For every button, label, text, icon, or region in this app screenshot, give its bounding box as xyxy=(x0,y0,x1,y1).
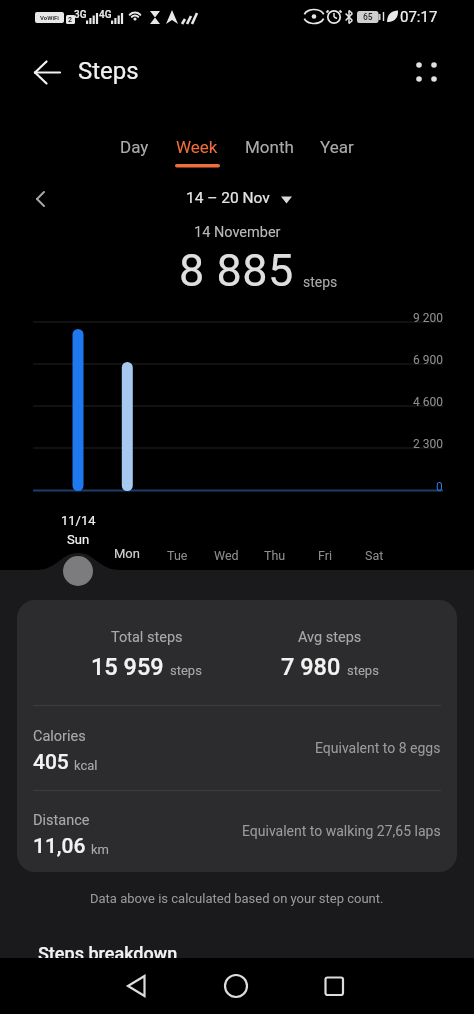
staticText: km xyxy=(91,842,109,857)
staticText: Data above is calculated based on your s… xyxy=(90,891,384,906)
button[interactable] xyxy=(405,50,449,94)
button[interactable] xyxy=(26,184,54,214)
staticText: Sun xyxy=(67,532,90,547)
staticText: Avg steps xyxy=(298,629,362,646)
staticText: VoWiFi xyxy=(40,14,59,21)
staticText: Steps xyxy=(78,57,139,85)
staticText: 7 980 xyxy=(281,653,341,681)
button[interactable]: Week xyxy=(0,0,66,20)
button[interactable] xyxy=(316,958,474,1014)
staticText: 6 900 xyxy=(413,353,443,367)
staticText: kcal xyxy=(74,758,98,773)
staticText: Year xyxy=(320,137,354,157)
button[interactable]: Year xyxy=(0,0,60,20)
button[interactable]: Day xyxy=(0,0,60,20)
button[interactable]: 14 – 20 Nov xyxy=(0,0,140,18)
staticText: Wed xyxy=(214,548,239,563)
button[interactable] xyxy=(158,958,316,1014)
staticText: Mon xyxy=(114,546,140,561)
staticText: 15 959 xyxy=(91,653,164,681)
staticText: Calories xyxy=(33,728,86,745)
staticText: 405 xyxy=(33,750,69,775)
staticText: Distance xyxy=(33,812,90,829)
button[interactable] xyxy=(0,958,158,1014)
button[interactable]: Distance xyxy=(33,790,441,872)
button[interactable] xyxy=(24,56,72,90)
staticText: Equivalent to walking 27,65 laps xyxy=(242,823,441,839)
button[interactable]: Avg steps xyxy=(220,600,440,705)
staticText: 11,06 xyxy=(33,834,86,859)
staticText: 4 600 xyxy=(413,395,443,409)
staticText: steps xyxy=(347,663,379,678)
staticText: 07:17 xyxy=(400,8,438,26)
button[interactable]: Total steps xyxy=(36,600,256,705)
staticText: 9 200 xyxy=(413,311,443,325)
staticText: Equivalent to 8 eggs xyxy=(315,740,441,756)
staticText: 2 300 xyxy=(413,437,443,451)
staticText: Sat xyxy=(365,548,384,563)
staticText: 0 xyxy=(436,480,443,494)
staticText: 3G xyxy=(74,9,87,21)
staticText: steps xyxy=(170,663,202,678)
staticText: Fri xyxy=(318,548,333,563)
staticText: 8 885 xyxy=(179,244,294,297)
staticText: 11/14 xyxy=(61,513,96,528)
staticText: Total steps xyxy=(111,629,183,646)
staticText: Month xyxy=(245,137,294,157)
staticText: 14 November xyxy=(194,224,281,241)
staticText: Day xyxy=(120,137,149,157)
staticText: 14 – 20 Nov xyxy=(186,189,270,207)
button[interactable] xyxy=(63,556,93,586)
button[interactable]: Month xyxy=(0,0,74,20)
staticText: Steps breakdown xyxy=(38,943,178,964)
staticText: Tue xyxy=(167,548,188,563)
staticText: Week xyxy=(176,137,218,157)
staticText: Thu xyxy=(264,548,286,563)
staticText: 4G xyxy=(99,9,112,21)
staticText: 2 xyxy=(68,16,73,24)
button[interactable]: Calories xyxy=(33,705,441,790)
staticText: 65 xyxy=(363,12,373,22)
staticText: steps xyxy=(303,274,338,290)
